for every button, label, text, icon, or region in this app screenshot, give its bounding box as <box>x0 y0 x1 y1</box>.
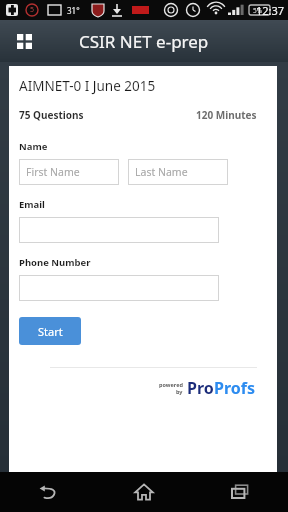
staticText: CSIR NET e-prep <box>79 30 209 53</box>
staticText: Start <box>38 324 63 339</box>
staticText: 120 Minutes <box>196 108 257 122</box>
button[interactable]: Start <box>19 317 81 345</box>
staticText: AIMNET-0 I June 2015 <box>19 77 156 95</box>
staticText: by <box>176 388 183 395</box>
staticText: powered <box>159 381 183 388</box>
staticText: Profs <box>214 377 255 399</box>
staticText: Name <box>19 140 48 153</box>
button[interactable] <box>19 275 219 301</box>
button[interactable]: Last Name <box>128 159 228 185</box>
staticText: 75 Questions <box>19 108 84 122</box>
staticText: 5% <box>253 6 263 15</box>
staticText: 5 <box>30 5 35 15</box>
button[interactable]: Home <box>96 472 192 512</box>
staticText: First Name <box>26 165 80 179</box>
staticText: Last Name <box>135 165 188 179</box>
button[interactable]: Recent apps <box>192 472 288 512</box>
staticText: 31° <box>67 5 80 16</box>
button[interactable] <box>19 217 219 243</box>
button[interactable]: Back <box>0 472 96 512</box>
button[interactable]: Apps menu <box>8 25 40 57</box>
staticText: Email <box>19 198 45 211</box>
button[interactable]: First Name <box>19 159 119 185</box>
staticText: 12:37 <box>256 3 285 18</box>
staticText: Pro <box>187 377 214 399</box>
staticText: Phone Number <box>19 256 91 269</box>
